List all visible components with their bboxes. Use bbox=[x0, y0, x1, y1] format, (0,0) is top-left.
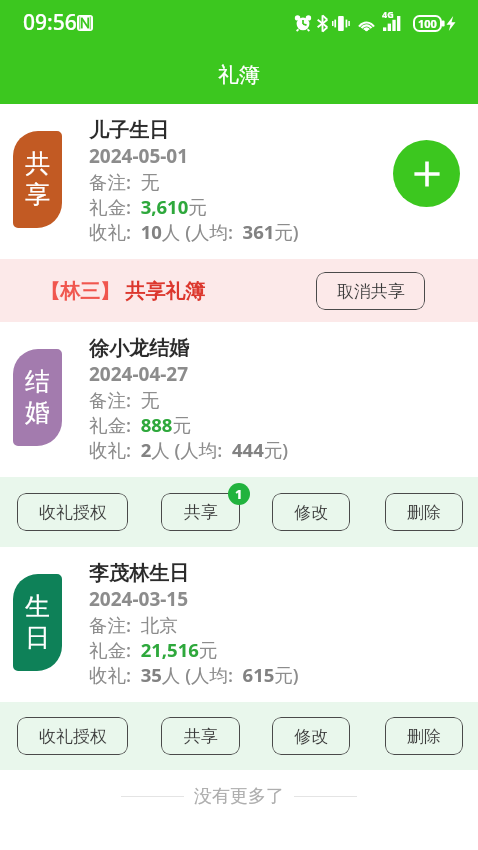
staticText: 结婚 bbox=[24, 366, 51, 429]
staticText: 修改 bbox=[294, 726, 328, 747]
button[interactable]: 共享 bbox=[161, 717, 240, 755]
staticText: 共享 bbox=[24, 148, 51, 211]
button[interactable]: 修改 bbox=[272, 493, 350, 531]
staticText: 09:56 bbox=[23, 8, 77, 37]
button[interactable]: 生日 bbox=[0, 547, 478, 702]
staticText: 礼簿 bbox=[218, 62, 260, 88]
staticText: 收礼授权 bbox=[39, 726, 107, 747]
button[interactable]: 收礼授权 bbox=[17, 493, 128, 531]
staticText: 删除 bbox=[407, 726, 441, 747]
staticText: 2024-04-27 bbox=[89, 361, 189, 387]
staticText: 共享 bbox=[184, 502, 218, 523]
staticText: 收礼: 10人 (人均: 361元) bbox=[89, 219, 299, 244]
staticText: 2024-03-15 bbox=[89, 586, 189, 612]
staticText: 李茂林生日 bbox=[89, 561, 189, 586]
button[interactable]: 收礼授权 bbox=[17, 717, 128, 755]
staticText: 没有更多了 bbox=[194, 785, 284, 808]
staticText: 收礼授权 bbox=[39, 502, 107, 523]
staticText: 礼金: 21,516元 bbox=[89, 637, 218, 662]
staticText: 修改 bbox=[294, 502, 328, 523]
staticText: 礼金: 888元 bbox=[89, 412, 191, 437]
button[interactable]: 修改 bbox=[272, 717, 350, 755]
staticText: 收礼: 2人 (人均: 444元) bbox=[89, 437, 288, 462]
staticText: 徐小龙结婚 bbox=[89, 336, 189, 361]
staticText: 1 bbox=[235, 485, 243, 503]
staticText: 礼金: 3,610元 bbox=[89, 194, 207, 219]
button[interactable]: 结婚 bbox=[0, 322, 478, 477]
button[interactable]: 共享 bbox=[0, 104, 478, 259]
staticText: 100 bbox=[418, 16, 437, 31]
staticText: 儿子生日 bbox=[89, 118, 169, 143]
staticText: 备注: 无 bbox=[89, 169, 160, 194]
staticText: 【林三】 共享礼簿 bbox=[40, 277, 206, 304]
button[interactable]: 取消共享 bbox=[316, 272, 425, 310]
staticText: 收礼: 35人 (人均: 615元) bbox=[89, 662, 299, 687]
staticText: 删除 bbox=[407, 502, 441, 523]
button[interactable]: 删除 bbox=[385, 493, 463, 531]
staticText: 备注: 无 bbox=[89, 387, 160, 412]
staticText: 4G bbox=[382, 8, 394, 20]
button[interactable]: 共享 bbox=[161, 493, 240, 531]
staticText: 共享 bbox=[184, 726, 218, 747]
staticText: 2024-05-01 bbox=[89, 143, 189, 169]
staticText: 取消共享 bbox=[337, 281, 405, 302]
button[interactable]: Add bbox=[393, 140, 460, 207]
staticText: 备注: 北京 bbox=[89, 612, 178, 637]
staticText: 生日 bbox=[24, 591, 51, 654]
button[interactable]: 删除 bbox=[385, 717, 463, 755]
